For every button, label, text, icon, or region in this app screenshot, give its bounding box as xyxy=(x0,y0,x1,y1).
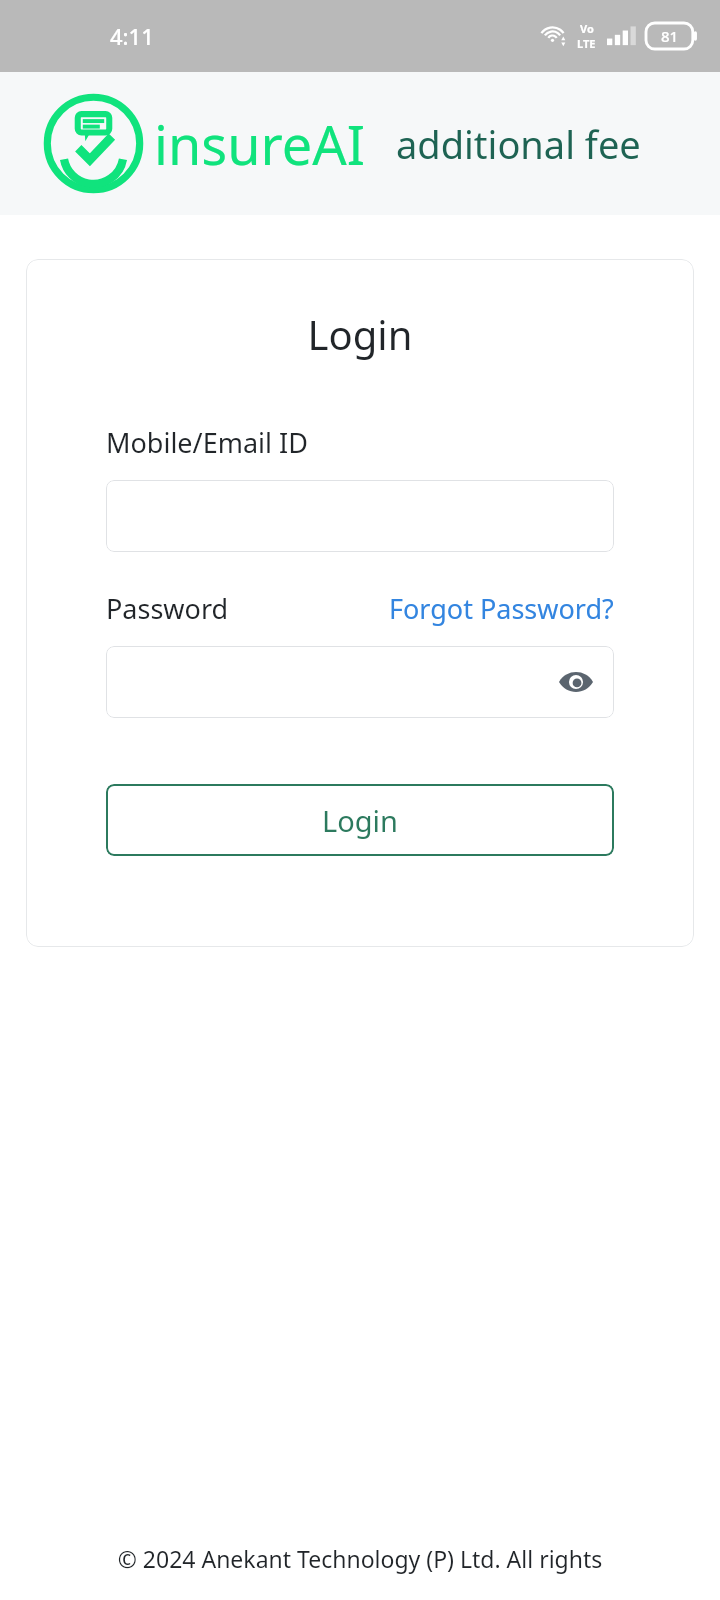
button[interactable]: Forgot Password? xyxy=(389,590,614,627)
staticText: Mobile/Email ID xyxy=(106,424,308,461)
staticText: Login xyxy=(322,801,398,840)
staticText: Vo xyxy=(580,21,594,36)
staticText: additional fee xyxy=(396,118,641,170)
staticText: insureAI xyxy=(154,107,366,181)
staticText: Forgot Password? xyxy=(389,590,614,627)
staticText: Password xyxy=(106,590,229,627)
button[interactable]: Show password xyxy=(106,646,614,718)
button[interactable]: Login xyxy=(106,784,614,856)
staticText: 81 xyxy=(661,26,679,46)
button[interactable] xyxy=(106,480,614,552)
staticText: 4:11 xyxy=(110,21,154,51)
button[interactable]: Show password xyxy=(552,658,600,706)
staticText: LTE xyxy=(577,36,596,51)
staticText: © 2024 Anekant Technology (P) Ltd. All r… xyxy=(0,1543,720,1574)
staticText: Login xyxy=(106,307,614,361)
